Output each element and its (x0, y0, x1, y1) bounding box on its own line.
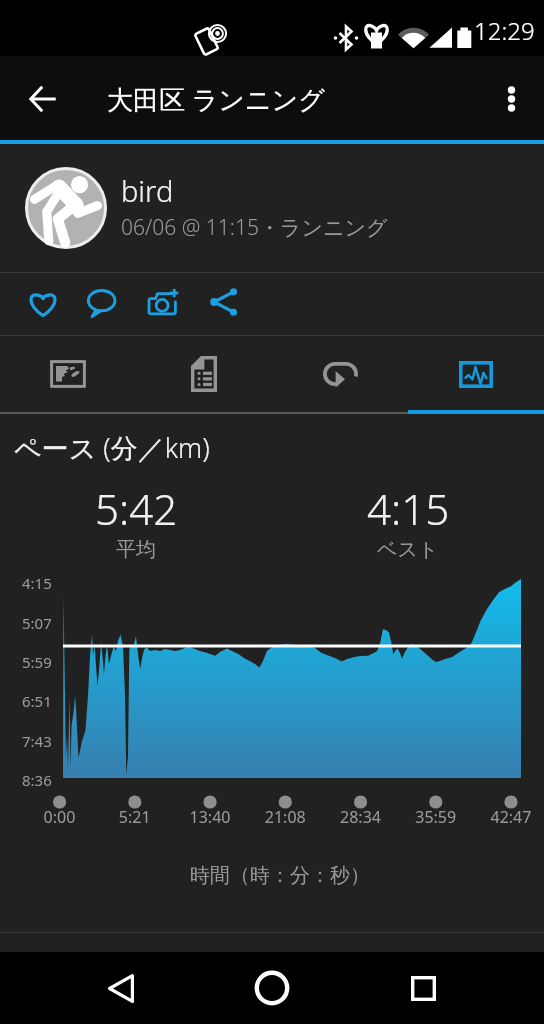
button[interactable]: Details (136, 336, 272, 414)
button[interactable]: bird (0, 144, 544, 272)
staticText: 06/06 @ 11:15・ランニング (121, 213, 388, 242)
button[interactable]: Recents (393, 958, 453, 1018)
button[interactable]: Map (0, 336, 136, 414)
button[interactable]: Charts (408, 336, 544, 414)
staticText: ベスト (377, 537, 439, 562)
staticText: ペース (分／km) (14, 429, 210, 466)
button[interactable]: Add photo (140, 273, 188, 335)
staticText: 12:29 (474, 14, 535, 47)
staticText: 平均 (116, 537, 156, 562)
button[interactable]: Like (19, 273, 67, 335)
button[interactable]: More options (486, 72, 538, 124)
button[interactable]: Share (200, 273, 248, 335)
button[interactable]: Back (91, 958, 151, 1018)
button[interactable]: Home (242, 958, 302, 1018)
button[interactable]: Back (14, 70, 70, 126)
staticText: 大田区 ランニング (107, 81, 325, 117)
button[interactable]: Comment (78, 273, 126, 335)
button[interactable]: Laps (272, 336, 408, 414)
staticText: 4:15 (367, 480, 450, 537)
staticText: 5:42 (95, 480, 178, 537)
staticText: bird (121, 171, 174, 210)
